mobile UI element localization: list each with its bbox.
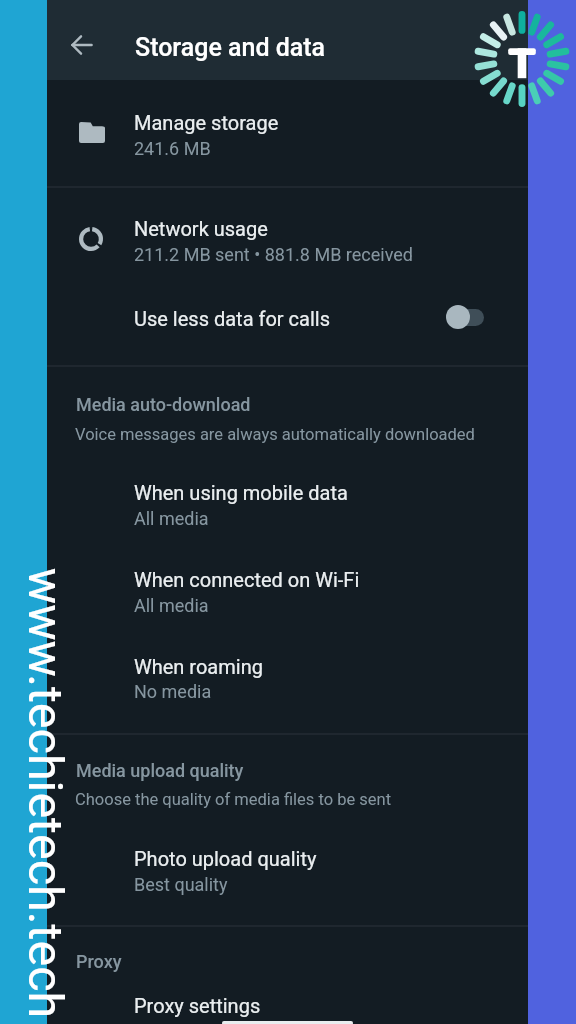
- button[interactable]: Back: [55, 18, 109, 72]
- staticText: When using mobile data: [134, 481, 348, 504]
- button[interactable]: [47, 818, 528, 905]
- staticText: Proxy: [76, 951, 122, 972]
- staticText: www.techietech.tech: [17, 563, 74, 1023]
- staticText: All media: [134, 595, 209, 616]
- staticText: Media upload quality: [76, 760, 244, 781]
- button[interactable]: Use less data for calls: [434, 295, 497, 340]
- button[interactable]: [47, 985, 528, 1024]
- staticText: When roaming: [134, 655, 263, 678]
- staticText: Network usage: [134, 217, 268, 240]
- staticText: All media: [134, 508, 209, 529]
- staticText: 211.2 MB sent • 881.8 MB received: [134, 244, 413, 265]
- staticText: Use less data for calls: [134, 307, 330, 330]
- staticText: Voice messages are always automatically …: [75, 425, 475, 444]
- button[interactable]: [47, 626, 528, 713]
- button[interactable]: [47, 80, 528, 186]
- staticText: Choose the quality of media files to be …: [75, 790, 392, 809]
- staticText: Photo upload quality: [134, 847, 317, 870]
- staticText: When connected on Wi-Fi: [134, 568, 360, 591]
- button[interactable]: [47, 280, 528, 365]
- button[interactable]: [47, 539, 528, 626]
- staticText: Proxy settings: [134, 994, 261, 1017]
- staticText: Storage and data: [135, 33, 326, 62]
- button[interactable]: [47, 452, 528, 539]
- staticText: No media: [134, 681, 212, 702]
- button[interactable]: [47, 187, 528, 273]
- staticText: Media auto-download: [76, 394, 251, 415]
- staticText: Best quality: [134, 874, 228, 895]
- staticText: 241.6 MB: [134, 138, 211, 159]
- staticText: Manage storage: [134, 111, 279, 134]
